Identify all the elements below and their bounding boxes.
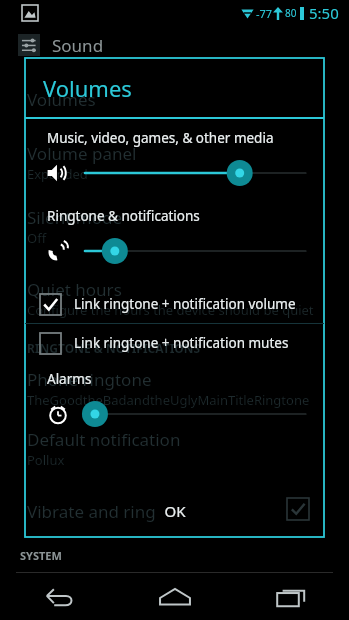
staticText: Phone ringtone <box>27 368 152 391</box>
staticText: Volume panel <box>27 142 137 165</box>
staticText: Configure the hours the device should be… <box>27 301 314 319</box>
staticText: Quiet hours <box>27 278 122 301</box>
staticText: Volumes <box>27 88 96 111</box>
staticText: TheGoodtheBadandtheUglyMainTitleRingtone <box>27 391 310 409</box>
other: volume icon <box>45 160 71 186</box>
staticText: -77 <box>256 6 273 21</box>
button[interactable]: volume icon <box>25 151 324 195</box>
staticText: Off <box>27 229 47 247</box>
button[interactable]: volume icon <box>25 392 324 436</box>
staticText: Link ringtone + notification volume <box>74 295 296 313</box>
button[interactable]: Recents <box>233 574 349 620</box>
staticText: OK <box>164 501 186 521</box>
staticText: Alarms <box>47 370 92 388</box>
button[interactable]: OK <box>25 485 324 537</box>
staticText: Silent mode <box>27 206 122 229</box>
button[interactable]: volume icon <box>25 229 324 273</box>
other: volume icon <box>45 401 71 427</box>
staticText: Ringtone & notifications <box>47 207 200 225</box>
staticText: Sound <box>52 34 104 57</box>
staticText: Expanded <box>27 165 88 183</box>
other: volume icon <box>45 238 71 264</box>
staticText: 5:50 <box>309 3 339 23</box>
button[interactable]: Back <box>0 574 117 620</box>
staticText: Music, video, games, & other media <box>47 129 274 147</box>
staticText: Volumes <box>43 73 132 103</box>
staticText: Pollux <box>27 451 65 469</box>
staticText: Default notification <box>27 428 181 451</box>
button[interactable]: Vibrate and ring toggle <box>287 498 309 520</box>
staticText: Vibrate and ring <box>27 500 156 523</box>
button[interactable]: Home <box>117 574 233 620</box>
staticText: RINGTONE & NOTIFICATIONS <box>27 340 201 356</box>
staticText: 80 <box>285 6 297 20</box>
staticText: SYSTEM <box>20 548 62 563</box>
button[interactable]: Link ringtone + notification volume <box>25 285 324 323</box>
staticText: Link ringtone + notification mutes <box>74 334 289 352</box>
button[interactable]: Link ringtone + notification mutes <box>25 324 324 362</box>
